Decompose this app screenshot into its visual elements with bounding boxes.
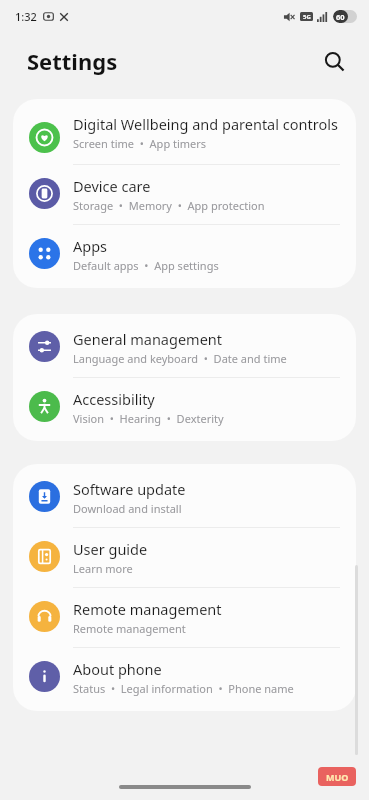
staticText: Apps bbox=[73, 236, 108, 256]
staticText: Device care bbox=[73, 176, 151, 196]
staticText: Learn more bbox=[73, 561, 133, 576]
staticText: Status • Legal information • Phone name bbox=[73, 681, 294, 696]
staticText: 5G bbox=[303, 13, 311, 21]
staticText: General management bbox=[73, 329, 223, 349]
staticText: Software update bbox=[73, 479, 186, 499]
button[interactable]: Digital Wellbeing and parental controls bbox=[13, 103, 356, 164]
staticText: Remote management bbox=[73, 621, 186, 636]
staticText: 60 bbox=[336, 12, 345, 22]
button[interactable]: Device care bbox=[13, 165, 356, 224]
button[interactable]: Search bbox=[317, 44, 351, 78]
staticText: Accessibility bbox=[73, 389, 155, 409]
button[interactable]: General management bbox=[13, 318, 356, 377]
staticText: Screen time • App timers bbox=[73, 136, 207, 151]
button[interactable]: Software update bbox=[13, 468, 356, 527]
staticText: 1:32 bbox=[15, 9, 37, 24]
button[interactable]: About phone bbox=[13, 648, 356, 707]
staticText: MUO bbox=[326, 771, 349, 783]
staticText: Vision • Hearing • Dexterity bbox=[73, 411, 224, 426]
staticText: Storage • Memory • App protection bbox=[73, 198, 265, 213]
staticText: User guide bbox=[73, 539, 148, 559]
button[interactable]: Accessibility bbox=[13, 378, 356, 437]
button[interactable]: User guide bbox=[13, 528, 356, 587]
button[interactable]: Remote management bbox=[13, 588, 356, 647]
staticText: Language and keyboard • Date and time bbox=[73, 351, 287, 366]
staticText: About phone bbox=[73, 659, 162, 679]
staticText: Settings bbox=[27, 46, 118, 76]
staticText: Default apps • App settings bbox=[73, 258, 219, 273]
staticText: Digital Wellbeing and parental controls bbox=[73, 114, 338, 134]
staticText: Download and install bbox=[73, 501, 182, 516]
staticText: Remote management bbox=[73, 599, 222, 619]
button[interactable]: Apps bbox=[13, 225, 356, 284]
